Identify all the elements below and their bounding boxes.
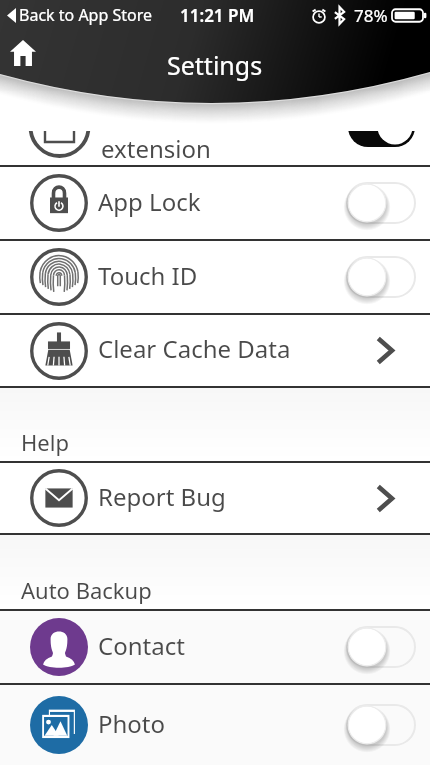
- button[interactable]: Clear Cache Data: [0, 315, 430, 386]
- button[interactable]: Home: [2, 32, 44, 74]
- staticText: Touch ID: [98, 259, 198, 292]
- button[interactable]: Report Bug: [0, 463, 430, 533]
- staticText: Contact: [98, 629, 185, 662]
- staticText: Auto Backup: [21, 575, 152, 605]
- staticText: Clear Cache Data: [98, 332, 291, 365]
- staticText: extension: [101, 132, 211, 165]
- button[interactable]: Photo: [0, 685, 430, 765]
- button[interactable]: extension: [0, 91, 430, 165]
- staticText: 78%: [354, 4, 388, 27]
- button[interactable]: App Lock: [0, 167, 430, 239]
- button[interactable]: Touch ID: [0, 241, 430, 313]
- staticText: Report Bug: [98, 480, 226, 513]
- staticText: 11:21 PM: [180, 4, 255, 27]
- staticText: App Lock: [98, 185, 201, 218]
- button[interactable]: Toggle: [347, 257, 415, 297]
- staticText: Back to App Store: [19, 4, 152, 26]
- staticText: Photo: [98, 707, 166, 740]
- button[interactable]: Contact: [0, 611, 430, 683]
- button[interactable]: Toggle: [347, 705, 415, 745]
- button[interactable]: Toggle: [347, 183, 415, 223]
- button[interactable]: Toggle: [347, 627, 415, 667]
- staticText: Help: [21, 427, 69, 457]
- staticText: Settings: [167, 48, 263, 82]
